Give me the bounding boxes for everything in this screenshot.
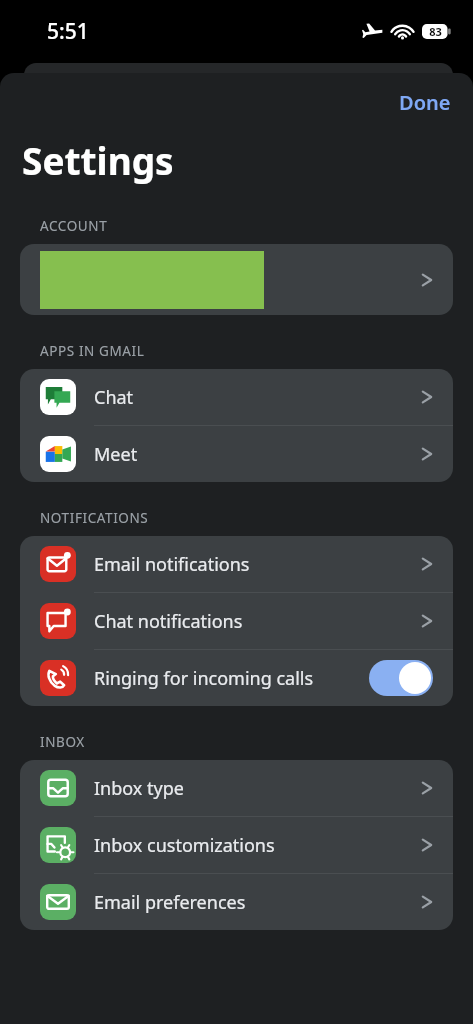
staticText: 5:51 <box>47 17 89 46</box>
button[interactable]: Ringing for incoming calls <box>20 650 453 706</box>
staticText: INBOX <box>40 733 85 751</box>
button[interactable]: Email notifications <box>20 536 453 592</box>
button[interactable]: Chat <box>20 369 453 425</box>
button[interactable]: Done <box>387 81 463 124</box>
staticText: Meet <box>94 442 138 467</box>
staticText: Inbox type <box>94 776 184 801</box>
button[interactable]: Ringing for incoming calls toggle, on <box>369 660 433 696</box>
button[interactable]: Inbox customizations <box>20 817 453 873</box>
staticText: ACCOUNT <box>40 217 108 235</box>
staticText: Inbox customizations <box>94 833 275 858</box>
staticText: Ringing for incoming calls <box>94 666 314 691</box>
button[interactable]: Account <box>20 244 453 315</box>
button[interactable]: Meet <box>20 426 453 482</box>
staticText: Done <box>399 89 451 116</box>
staticText: Chat <box>94 385 134 410</box>
staticText: Chat notifications <box>94 609 243 634</box>
button[interactable]: Email preferences <box>20 874 453 930</box>
staticText: Email preferences <box>94 890 246 915</box>
button[interactable]: Chat notifications <box>20 593 453 649</box>
staticText: 83 <box>429 24 442 39</box>
staticText: APPS IN GMAIL <box>40 342 145 360</box>
staticText: Settings <box>22 135 174 185</box>
staticText: NOTIFICATIONS <box>40 509 149 527</box>
button[interactable]: Inbox type <box>20 760 453 816</box>
staticText: Email notifications <box>94 552 250 577</box>
